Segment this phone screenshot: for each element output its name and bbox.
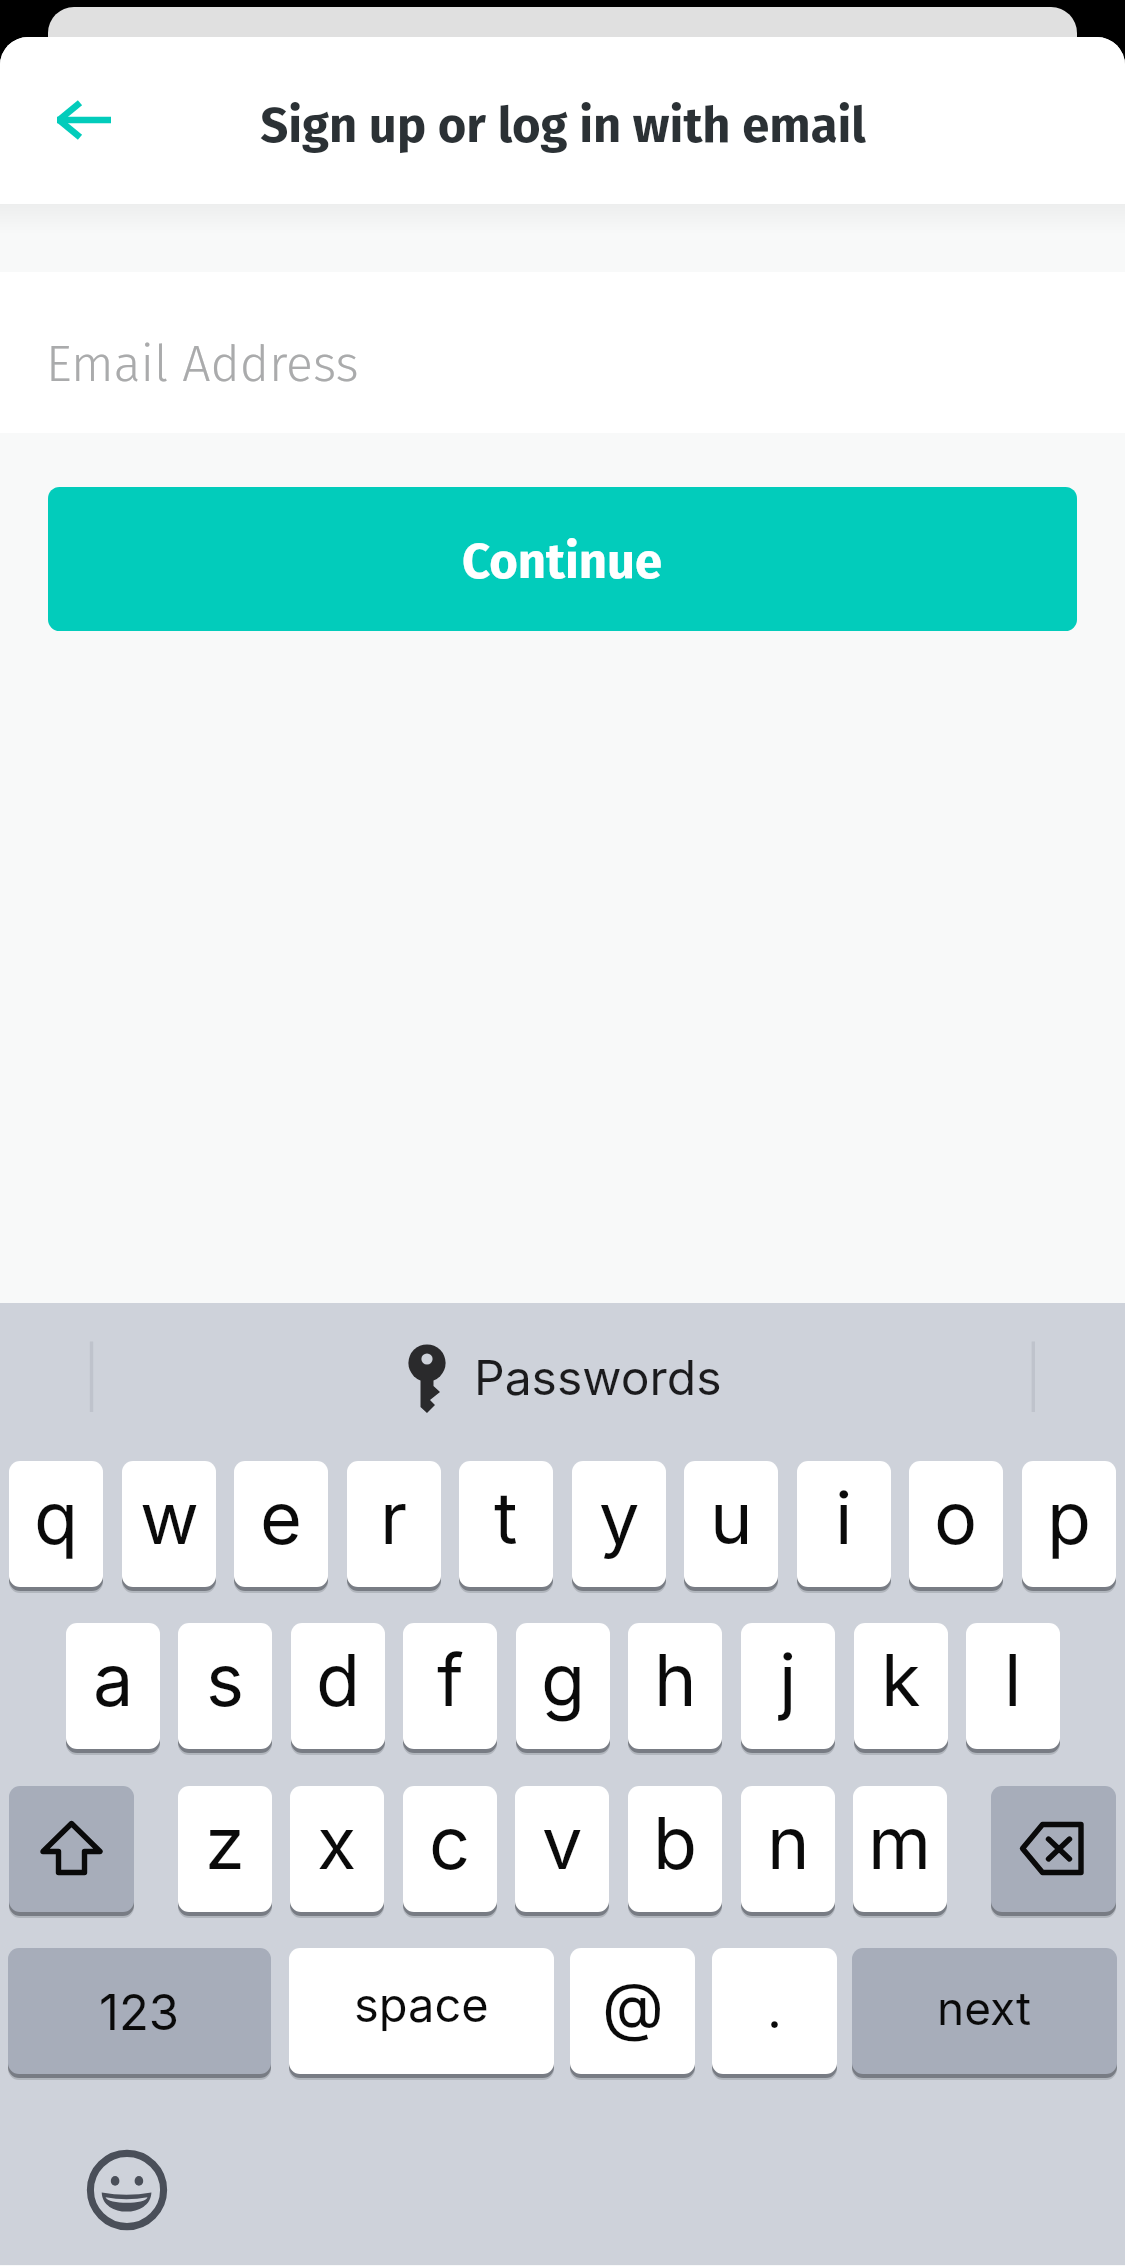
staticText: space <box>354 1976 489 2033</box>
staticText: c <box>429 1799 471 1886</box>
button[interactable]: f <box>403 1623 497 1749</box>
button[interactable]: o <box>909 1461 1003 1587</box>
button[interactable]: . <box>712 1948 837 2074</box>
button[interactable]: Continue <box>48 487 1077 631</box>
staticText: y <box>599 1474 640 1561</box>
staticText: j <box>779 1636 797 1723</box>
staticText: g <box>541 1636 586 1723</box>
staticText: i <box>835 1474 853 1561</box>
button[interactable]: Back <box>37 73 131 167</box>
button[interactable]: Passwords <box>408 1329 718 1429</box>
button[interactable]: l <box>966 1623 1060 1749</box>
staticText: x <box>317 1799 357 1886</box>
staticText: Continue <box>462 532 663 591</box>
staticText: t <box>494 1474 518 1561</box>
staticText: a <box>93 1636 134 1723</box>
button[interactable]: Email Address <box>0 272 1125 433</box>
button[interactable]: b <box>628 1786 722 1912</box>
button[interactable]: v <box>515 1786 609 1912</box>
button[interactable]: e <box>234 1461 328 1587</box>
staticText: o <box>934 1474 978 1561</box>
staticText: r <box>380 1474 408 1561</box>
staticText: p <box>1047 1474 1092 1561</box>
staticText: b <box>653 1799 698 1886</box>
staticText: . <box>767 1978 782 2041</box>
button[interactable]: n <box>741 1786 835 1912</box>
staticText: u <box>710 1474 753 1561</box>
button[interactable]: h <box>628 1623 722 1749</box>
staticText: @ <box>602 1967 664 2044</box>
button[interactable]: a <box>66 1623 160 1749</box>
button[interactable]: next <box>852 1948 1117 2074</box>
staticText: m <box>868 1799 932 1886</box>
staticText: l <box>1004 1636 1022 1723</box>
staticText: d <box>316 1636 361 1723</box>
staticText: v <box>542 1799 583 1886</box>
button[interactable]: c <box>403 1786 497 1912</box>
staticText: Email Address <box>46 334 359 394</box>
staticText: z <box>205 1799 245 1886</box>
button[interactable]: Shift <box>9 1786 134 1912</box>
button[interactable]: space <box>289 1948 554 2074</box>
staticText: f <box>437 1636 464 1723</box>
staticText: w <box>140 1474 199 1561</box>
staticText: 123 <box>99 1983 180 2042</box>
button[interactable]: m <box>853 1786 947 1912</box>
button[interactable]: z <box>178 1786 272 1912</box>
button[interactable]: u <box>684 1461 778 1587</box>
button[interactable]: d <box>291 1623 385 1749</box>
staticText: Passwords <box>474 1348 722 1406</box>
staticText: next <box>937 1980 1032 2036</box>
button[interactable]: t <box>459 1461 553 1587</box>
button[interactable]: x <box>290 1786 384 1912</box>
button[interactable]: r <box>347 1461 441 1587</box>
button[interactable]: q <box>9 1461 103 1587</box>
staticText: e <box>260 1474 302 1561</box>
button[interactable]: g <box>516 1623 610 1749</box>
staticText: k <box>881 1636 921 1723</box>
staticText: s <box>206 1636 245 1723</box>
button[interactable]: 123 <box>8 1948 271 2074</box>
staticText: Sign up or log in with email <box>260 96 866 155</box>
button[interactable]: s <box>178 1623 272 1749</box>
button[interactable]: j <box>741 1623 835 1749</box>
button[interactable]: y <box>572 1461 666 1587</box>
button[interactable]: @ <box>570 1948 695 2074</box>
staticText: q <box>34 1474 79 1561</box>
button[interactable]: p <box>1022 1461 1116 1587</box>
staticText: n <box>767 1799 810 1886</box>
staticText: h <box>654 1636 697 1723</box>
button[interactable]: k <box>854 1623 948 1749</box>
button[interactable]: Backspace <box>991 1786 1116 1912</box>
button[interactable]: w <box>122 1461 216 1587</box>
button[interactable]: Emoji keyboard <box>87 2150 167 2230</box>
button[interactable]: i <box>797 1461 891 1587</box>
